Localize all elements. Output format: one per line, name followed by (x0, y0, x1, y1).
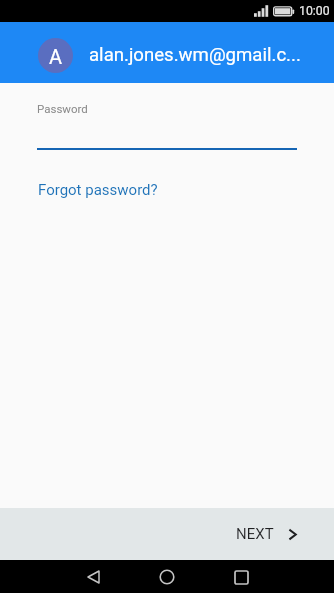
button[interactable]: Password field (37, 99, 297, 150)
button[interactable]: A (0, 22, 334, 83)
staticText: 10:00 (299, 4, 330, 18)
button[interactable]: NEXT (226, 515, 325, 553)
staticText: A (49, 45, 63, 68)
button[interactable]: Home (152, 562, 182, 592)
staticText: NEXT (236, 525, 274, 543)
staticText: Password (37, 102, 88, 115)
staticText: Forgot password? (38, 181, 158, 199)
button[interactable]: Forgot password? (30, 176, 166, 204)
button[interactable]: Back (78, 562, 108, 592)
button[interactable]: Recent apps (226, 562, 256, 592)
staticText: alan.jones.wm@gmail.c... (89, 44, 301, 66)
